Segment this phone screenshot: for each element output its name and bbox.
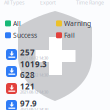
staticText: 2021-08-12 14:30 (20, 72, 48, 78)
staticText: 2021-08-12 14:30 (20, 55, 48, 61)
staticText: 97.9 (20, 98, 37, 109)
staticText: Fail (64, 31, 75, 40)
staticText: All (13, 19, 21, 28)
staticText: 1019.3628 (20, 59, 47, 80)
staticText: 2021-08-12 14:30 (20, 106, 48, 110)
staticText: Success (13, 31, 37, 40)
staticText: 2021-08-12 14:30 (20, 89, 48, 95)
button[interactable]: Success (5, 31, 45, 40)
button[interactable]: Fail (56, 31, 96, 40)
staticText: 121 (20, 81, 35, 92)
staticText: Time Range (76, 0, 104, 6)
staticText: Warning (64, 19, 91, 28)
staticText: 257 (20, 47, 35, 58)
button[interactable]: Warning (56, 19, 96, 28)
button[interactable]: All (5, 19, 45, 28)
staticText: All Types (4, 0, 25, 6)
staticText: Export (40, 0, 56, 6)
